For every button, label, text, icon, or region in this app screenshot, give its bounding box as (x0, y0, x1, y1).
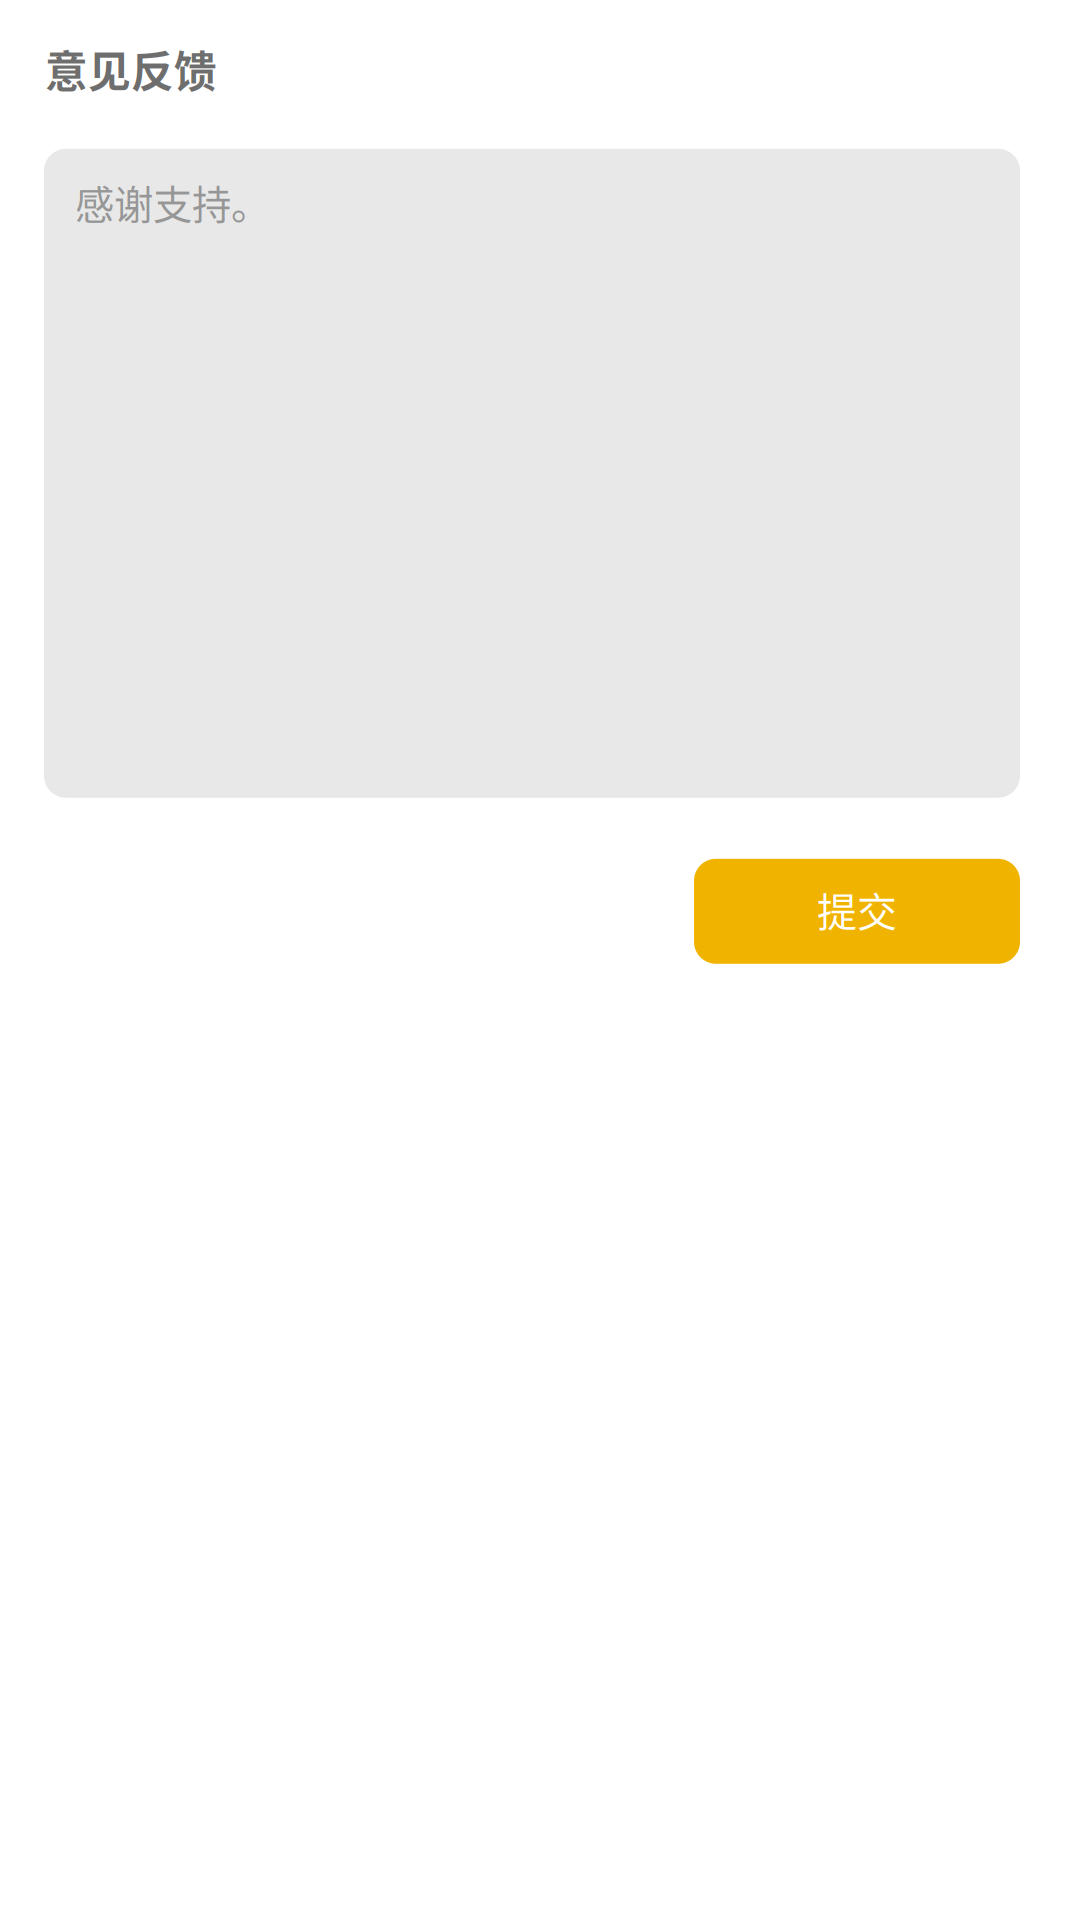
button[interactable]: 提交 (694, 859, 1020, 964)
button[interactable]: 感谢支持。 (44, 149, 1020, 798)
staticText: 意见反馈 (45, 38, 217, 100)
staticText: 感谢支持。 (75, 174, 270, 231)
staticText: 提交 (817, 880, 897, 938)
